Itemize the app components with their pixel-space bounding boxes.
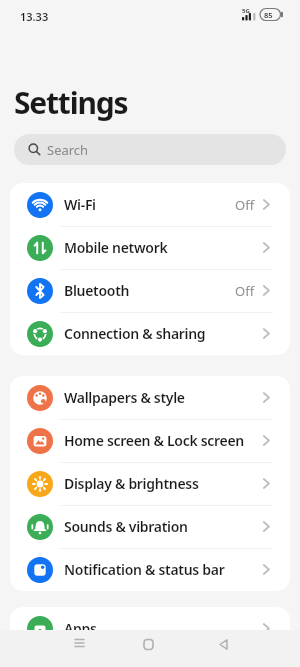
button[interactable]: Home screen & Lock screen — [10, 419, 290, 462]
button[interactable]: Bluetooth — [10, 269, 290, 312]
button[interactable]: Mobile network — [10, 226, 290, 269]
staticText: Off — [235, 196, 255, 214]
button[interactable]: Connection & sharing — [10, 312, 290, 355]
button[interactable]: Notification & status bar — [10, 548, 290, 591]
button[interactable]: Wallpapers & style — [10, 376, 290, 419]
staticText: Connection & sharing — [64, 324, 206, 343]
staticText: 85 — [264, 10, 273, 20]
button[interactable]: Sounds & vibration — [10, 505, 290, 548]
button[interactable] — [214, 635, 233, 654]
staticText: Wi-Fi — [64, 195, 96, 214]
staticText: Display & brightness — [64, 474, 199, 493]
staticText: 5G — [242, 7, 250, 15]
button[interactable]: Apps — [10, 607, 290, 650]
button[interactable] — [70, 635, 89, 654]
staticText: Apps — [64, 619, 97, 638]
staticText: Wallpapers & style — [64, 388, 185, 407]
button[interactable] — [139, 635, 158, 654]
staticText: Notification & status bar — [64, 560, 225, 579]
staticText: Mobile network — [64, 238, 168, 257]
staticText: Sounds & vibration — [64, 517, 188, 536]
button[interactable]: Search — [14, 134, 286, 165]
staticText: Settings — [14, 82, 128, 123]
button[interactable]: Display & brightness — [10, 462, 290, 505]
staticText: Search — [47, 141, 89, 159]
staticText: Off — [235, 282, 255, 300]
staticText: Bluetooth — [64, 281, 130, 300]
staticText: 13.33 — [20, 9, 49, 24]
button[interactable]: Wi-Fi — [10, 183, 290, 226]
staticText: Home screen & Lock screen — [64, 431, 244, 450]
